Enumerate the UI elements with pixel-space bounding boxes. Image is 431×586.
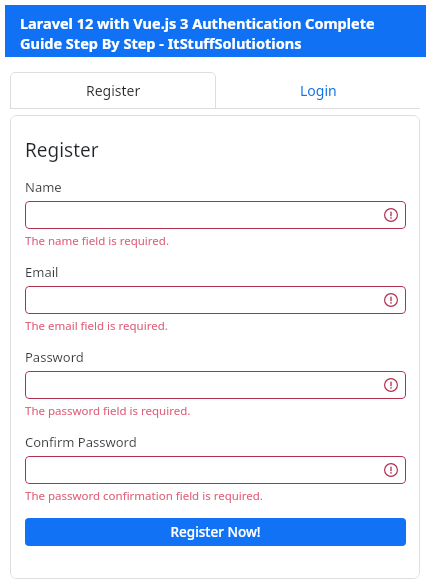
staticText: Email [25,263,59,281]
button[interactable]: Register [10,72,216,109]
other: Field has an error [384,293,398,307]
staticText: Register [86,81,141,100]
staticText: Register [25,137,99,163]
staticText: The name field is required. [25,233,169,249]
staticText: The password confirmation field is requi… [25,488,263,504]
staticText: Laravel 12 with Vue.js 3 Authentication … [20,13,416,53]
button[interactable]: Field has an error [25,286,406,314]
staticText: The email field is required. [25,318,168,334]
other: Field has an error [384,463,398,477]
staticText: Login [300,81,337,100]
other: Field has an error [384,208,398,222]
button[interactable]: Login [216,72,420,109]
button[interactable]: Field has an error [25,456,406,484]
button[interactable]: Field has an error [25,371,406,399]
staticText: Password [25,348,84,366]
staticText: Name [25,178,62,196]
staticText: Confirm Password [25,433,137,451]
button[interactable]: Field has an error [25,201,406,229]
button[interactable]: Register Now! [25,518,406,546]
other: Field has an error [384,378,398,392]
staticText: The password field is required. [25,403,191,419]
staticText: Register Now! [170,523,261,541]
